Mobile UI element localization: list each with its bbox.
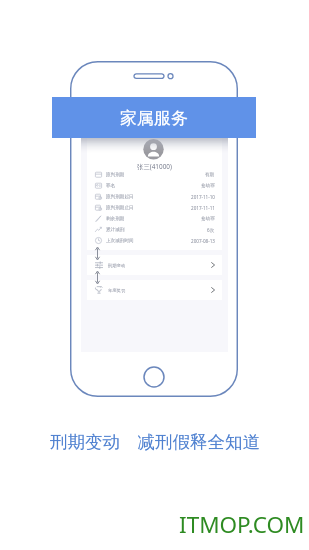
staticText: 剩余刑期 xyxy=(106,216,125,222)
staticText: 2017-11-11 xyxy=(191,205,215,211)
button[interactable]: 上次减刑时间 xyxy=(87,235,222,246)
button[interactable]: 罪名 xyxy=(87,180,222,191)
staticText: 刑期变动 减刑假释全知道 xyxy=(50,429,260,453)
staticText: 抢劫罪 xyxy=(201,216,215,222)
other: Spacing indicator xyxy=(93,247,102,295)
staticText: 有期 xyxy=(205,172,215,178)
staticText: 原判刑期止日 xyxy=(106,205,134,211)
staticText: 罪名 xyxy=(106,183,116,189)
button[interactable]: 刑期变动 xyxy=(87,255,222,275)
staticText: 上次减刑时间 xyxy=(106,238,134,244)
staticText: 2007-08-13 xyxy=(191,238,215,244)
button[interactable]: 年度奖罚 xyxy=(87,280,222,300)
staticText: 2017-11-10 xyxy=(191,194,215,200)
staticText: 抢劫罪 xyxy=(201,183,215,189)
staticText: 原判刑期起日 xyxy=(106,194,134,200)
staticText: 家属服务 xyxy=(120,108,188,129)
staticText: 6次 xyxy=(207,227,215,233)
staticText: 张三(41000) xyxy=(137,162,172,171)
staticText: ITMOP.COM xyxy=(179,509,305,540)
staticText: 年度奖罚 xyxy=(108,288,126,293)
staticText: 原判刑期 xyxy=(106,172,125,178)
button[interactable]: 原判刑期起日 xyxy=(87,191,222,202)
button[interactable]: 家属服务 xyxy=(52,97,256,138)
button[interactable]: 原判刑期止日 xyxy=(87,202,222,213)
button[interactable]: 原判刑期 xyxy=(87,169,222,180)
button[interactable]: 累计减刑 xyxy=(87,224,222,235)
button[interactable]: 剩余刑期 xyxy=(87,213,222,224)
staticText: 累计减刑 xyxy=(106,227,125,233)
staticText: 刑期变动 xyxy=(108,263,126,268)
